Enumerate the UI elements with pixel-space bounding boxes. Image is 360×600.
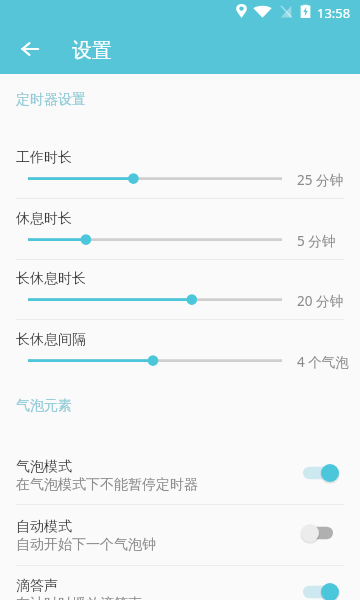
staticText: 气泡模式 bbox=[16, 458, 72, 476]
button[interactable]: 气泡模式 bbox=[0, 445, 360, 505]
staticText: 定时器设置 bbox=[16, 91, 86, 109]
button[interactable]: Toggle on bbox=[300, 582, 340, 600]
staticText: 25 分钟 bbox=[297, 171, 343, 189]
button[interactable]: Toggle on bbox=[300, 463, 340, 483]
button[interactable]: Back bbox=[7, 26, 52, 71]
staticText: 在计时时播放滴答声 bbox=[16, 595, 142, 600]
staticText: 气泡元素 bbox=[16, 397, 72, 415]
staticText: 休息时长 bbox=[16, 210, 72, 228]
button[interactable]: 自动模式 bbox=[0, 505, 360, 565]
staticText: 自动开始下一个气泡钟 bbox=[16, 536, 156, 554]
staticText: 5 分钟 bbox=[297, 232, 336, 250]
staticText: 4 个气泡 bbox=[297, 353, 349, 371]
staticText: 长休息时长 bbox=[16, 270, 86, 288]
staticText: 工作时长 bbox=[16, 149, 72, 167]
staticText: 自动模式 bbox=[16, 518, 72, 536]
staticText: 在气泡模式下不能暂停定时器 bbox=[16, 476, 198, 494]
button[interactable]: 长休息间隔 bbox=[0, 318, 360, 378]
button[interactable]: 休息时长 bbox=[0, 197, 360, 257]
button[interactable]: 工作时长 bbox=[0, 136, 360, 196]
staticText: 长休息间隔 bbox=[16, 331, 86, 349]
staticText: 滴答声 bbox=[16, 577, 58, 595]
button[interactable]: 滴答声 bbox=[0, 564, 360, 600]
button[interactable]: 长休息时长 bbox=[0, 257, 360, 317]
staticText: 13:58 bbox=[317, 4, 351, 22]
staticText: 设置 bbox=[72, 38, 112, 63]
button[interactable]: Toggle off bbox=[300, 523, 340, 543]
staticText: 20 分钟 bbox=[297, 292, 343, 310]
